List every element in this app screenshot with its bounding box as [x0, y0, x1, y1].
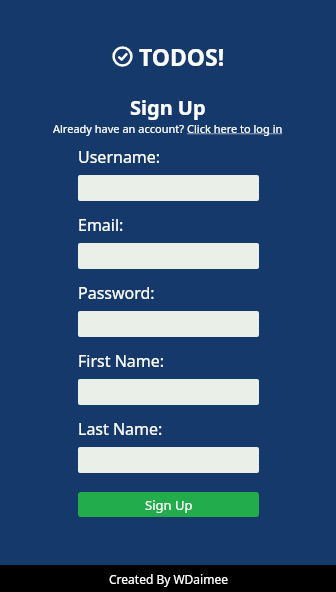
staticText: Password:	[78, 282, 155, 304]
staticText: Click here to log in	[187, 121, 283, 136]
button[interactable]: Click here to log in	[187, 121, 283, 136]
button[interactable]	[78, 311, 259, 337]
staticText: Already have an account?	[53, 121, 187, 136]
staticText: Email:	[78, 214, 124, 236]
staticText: Created By WDaimee	[109, 571, 228, 587]
staticText: Username:	[78, 146, 161, 168]
button[interactable]: Sign Up	[78, 492, 259, 517]
staticText: First Name:	[78, 350, 165, 372]
button[interactable]	[78, 379, 259, 405]
staticText: Last Name:	[78, 418, 163, 440]
staticText: Sign Up	[130, 94, 206, 121]
button[interactable]	[78, 447, 259, 473]
staticText: TODOS!	[139, 41, 225, 72]
button[interactable]	[78, 243, 259, 269]
staticText: Sign Up	[145, 496, 193, 514]
button[interactable]	[78, 175, 259, 201]
